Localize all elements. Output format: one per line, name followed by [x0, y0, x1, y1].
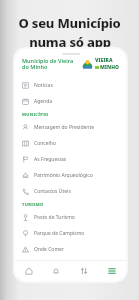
staticText: Município de Vieira do Minho [22, 57, 79, 71]
button[interactable]: Notifications [42, 261, 70, 281]
staticText: TURISMO [22, 202, 44, 208]
button[interactable]: Concelho [15, 135, 126, 151]
staticText: Onde Comer [34, 246, 64, 253]
staticText: Parque de Campismo [34, 230, 85, 237]
button[interactable]: Onde Comer [15, 241, 126, 257]
staticText: Contactos Úteis [34, 188, 71, 195]
button[interactable]: Património Arqueológico [15, 167, 126, 183]
button[interactable]: Mensagem do Presidente [15, 119, 126, 135]
button[interactable]: As Freguesias [15, 151, 126, 167]
button[interactable]: Agenda [15, 93, 126, 109]
staticText: Posto de Turismo [34, 214, 75, 221]
button[interactable]: Home [15, 261, 42, 281]
staticText: VIEIRA [95, 57, 113, 64]
staticText: Notícias [34, 82, 53, 89]
staticText: MUNICÍPIO [22, 112, 49, 118]
staticText: O seu Município [18, 14, 121, 32]
button[interactable]: Notícias [15, 77, 126, 93]
staticText: numa só app [29, 33, 111, 51]
staticText: MINHO [100, 64, 120, 71]
staticText: Mensagem do Presidente [34, 124, 95, 131]
button[interactable]: Contactos Úteis [15, 183, 126, 199]
staticText: As Freguesias [34, 156, 67, 163]
button[interactable]: Filters [70, 261, 98, 281]
staticText: Agenda [34, 98, 53, 105]
staticText: Concelho [34, 140, 56, 147]
button[interactable]: Parque de Campismo [15, 225, 126, 241]
staticText: Património Arqueológico [34, 172, 93, 179]
button[interactable]: Menu [98, 261, 126, 281]
button[interactable]: Posto de Turismo [15, 209, 126, 225]
